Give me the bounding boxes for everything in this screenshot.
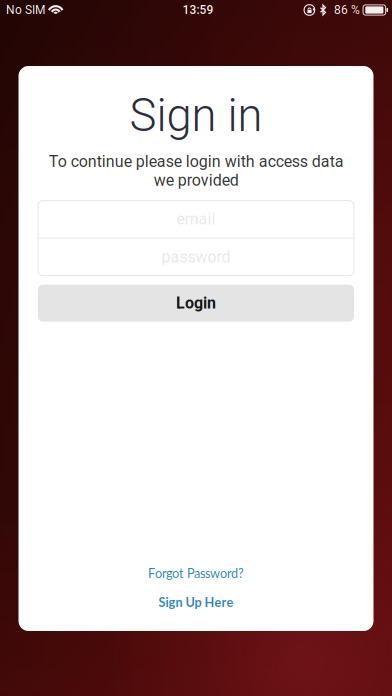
staticText: 13:59: [182, 3, 213, 17]
staticText: No SIM: [6, 3, 45, 17]
staticText: email: [176, 210, 215, 228]
staticText: Forgot Password?: [148, 565, 244, 581]
staticText: password: [161, 248, 230, 266]
button[interactable]: Login: [38, 285, 354, 322]
staticText: To continue please login with access dat…: [48, 152, 343, 190]
button[interactable]: Sign Up Here: [158, 592, 233, 612]
staticText: Sign Up Here: [158, 594, 233, 610]
staticText: 86 %: [334, 3, 360, 17]
button[interactable]: Forgot Password?: [148, 563, 244, 583]
staticText: Login: [176, 294, 216, 312]
staticText: Sign in: [129, 89, 262, 142]
button[interactable]: password: [38, 239, 354, 276]
